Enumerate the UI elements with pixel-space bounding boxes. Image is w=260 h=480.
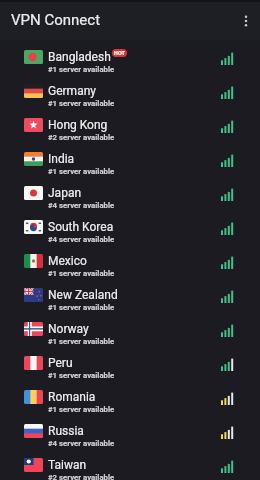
button[interactable]: Taiwan xyxy=(0,448,260,480)
button[interactable]: South Korea xyxy=(0,210,260,244)
staticText: #4 server available xyxy=(48,235,115,244)
button[interactable]: Japan xyxy=(0,176,260,210)
button[interactable]: Romania xyxy=(0,380,260,414)
button[interactable]: Norway xyxy=(0,312,260,346)
staticText: #4 server available xyxy=(48,439,115,448)
button[interactable]: India xyxy=(0,142,260,176)
staticText: Taiwan xyxy=(48,458,87,472)
button[interactable]: Mexico xyxy=(0,244,260,278)
staticText: HOT xyxy=(114,50,125,56)
staticText: Norway xyxy=(48,322,89,336)
staticText: Romania xyxy=(48,390,96,404)
staticText: #1 server available xyxy=(48,65,115,74)
staticText: Bangladesh xyxy=(48,50,111,64)
staticText: #1 server available xyxy=(48,167,115,176)
staticText: #1 server available xyxy=(48,405,115,414)
staticText: South Korea xyxy=(48,220,114,234)
button[interactable]: Bangladesh xyxy=(0,40,260,74)
button[interactable]: Germany xyxy=(0,74,260,108)
staticText: Mexico xyxy=(48,254,87,268)
button[interactable]: More options xyxy=(232,7,260,35)
staticText: Hong Kong xyxy=(48,118,108,132)
staticText: #4 server available xyxy=(48,201,115,210)
button[interactable]: Hong Kong xyxy=(0,108,260,142)
staticText: Peru xyxy=(48,356,73,370)
staticText: #1 server available xyxy=(48,337,115,346)
staticText: #1 server available xyxy=(48,303,115,312)
staticText: #2 server available xyxy=(48,473,115,480)
button[interactable]: New Zealand xyxy=(0,278,260,312)
staticText: VPN Connect xyxy=(11,11,101,29)
button[interactable]: Russia xyxy=(0,414,260,448)
staticText: #1 server available xyxy=(48,371,115,380)
staticText: India xyxy=(48,152,75,166)
staticText: #1 server available xyxy=(48,99,115,108)
staticText: Russia xyxy=(48,424,84,438)
staticText: New Zealand xyxy=(48,288,118,302)
staticText: #1 server available xyxy=(48,269,115,278)
staticText: #2 server available xyxy=(48,133,115,142)
button[interactable]: Peru xyxy=(0,346,260,380)
staticText: Japan xyxy=(48,186,82,200)
staticText: Germany xyxy=(48,84,96,98)
